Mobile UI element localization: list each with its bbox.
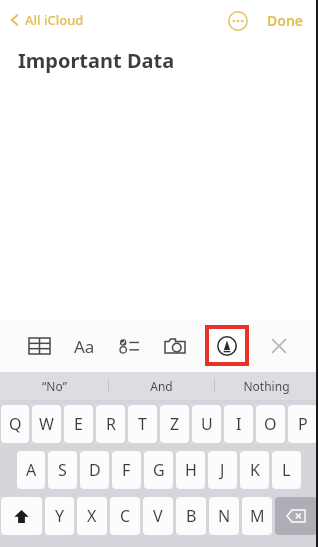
- staticText: S: [58, 459, 67, 481]
- button[interactable]: G: [144, 451, 173, 489]
- button[interactable]: H: [176, 451, 205, 489]
- staticText: Done: [267, 11, 304, 30]
- button[interactable]: Q: [1, 405, 29, 443]
- button[interactable]: L: [272, 451, 301, 489]
- staticText: T: [138, 413, 147, 435]
- staticText: D: [89, 459, 101, 481]
- staticText: All iCloud: [25, 11, 84, 29]
- staticText: H: [185, 459, 197, 481]
- button[interactable]: A: [17, 451, 45, 489]
- staticText: J: [220, 459, 225, 481]
- button[interactable]: Backspace: [275, 497, 317, 535]
- staticText: Z: [170, 413, 180, 435]
- staticText: V: [153, 505, 163, 527]
- staticText: P: [298, 413, 308, 435]
- staticText: G: [153, 459, 165, 481]
- staticText: Nothing: [243, 378, 290, 394]
- button[interactable]: Nothing: [215, 372, 318, 400]
- button[interactable]: M: [242, 497, 272, 535]
- button[interactable]: U: [192, 405, 221, 443]
- button[interactable]: P: [288, 405, 317, 443]
- staticText: R: [106, 413, 116, 435]
- staticText: F: [122, 459, 131, 481]
- button[interactable]: Markup: [212, 331, 242, 361]
- button[interactable]: X: [77, 497, 107, 535]
- staticText: O: [264, 413, 277, 435]
- staticText: Y: [55, 505, 65, 527]
- staticText: B: [186, 505, 197, 527]
- button[interactable]: S: [48, 451, 77, 489]
- button[interactable]: Z: [160, 405, 189, 443]
- button[interactable]: V: [143, 497, 173, 535]
- button[interactable]: Checklist: [114, 331, 144, 361]
- button[interactable]: B: [176, 497, 206, 535]
- staticText: Aa: [74, 335, 95, 358]
- button[interactable]: More options: [225, 8, 251, 34]
- button[interactable]: D: [80, 451, 109, 489]
- staticText: M: [250, 505, 265, 527]
- button[interactable]: Text format: [69, 331, 99, 361]
- button[interactable]: Shift: [1, 497, 42, 535]
- staticText: A: [26, 459, 37, 481]
- staticText: K: [250, 459, 260, 481]
- staticText: Q: [9, 413, 22, 435]
- button[interactable]: N: [209, 497, 239, 535]
- staticText: Important Data: [18, 47, 175, 74]
- button[interactable]: All iCloud: [8, 7, 86, 33]
- button[interactable]: Close: [264, 331, 294, 361]
- button[interactable]: I: [224, 405, 253, 443]
- button[interactable]: F: [112, 451, 141, 489]
- staticText: N: [218, 505, 231, 527]
- staticText: X: [87, 505, 97, 527]
- button[interactable]: And: [109, 372, 214, 400]
- button[interactable]: C: [110, 497, 140, 535]
- button[interactable]: R: [96, 405, 125, 443]
- button[interactable]: Done: [263, 7, 308, 34]
- staticText: E: [74, 413, 83, 435]
- staticText: C: [120, 505, 131, 527]
- button[interactable]: Table: [24, 331, 54, 361]
- button[interactable]: E: [64, 405, 93, 443]
- button[interactable]: K: [240, 451, 269, 489]
- button[interactable]: “No”: [0, 372, 108, 400]
- staticText: W: [39, 413, 54, 435]
- button[interactable]: Camera: [160, 331, 190, 361]
- staticText: I: [236, 413, 242, 435]
- staticText: U: [201, 413, 213, 435]
- staticText: L: [282, 459, 291, 481]
- button[interactable]: T: [128, 405, 157, 443]
- staticText: And: [150, 378, 173, 394]
- button[interactable]: Y: [45, 497, 74, 535]
- button[interactable]: O: [256, 405, 285, 443]
- staticText: “No”: [42, 378, 67, 394]
- button[interactable]: W: [32, 405, 61, 443]
- button[interactable]: J: [208, 451, 237, 489]
